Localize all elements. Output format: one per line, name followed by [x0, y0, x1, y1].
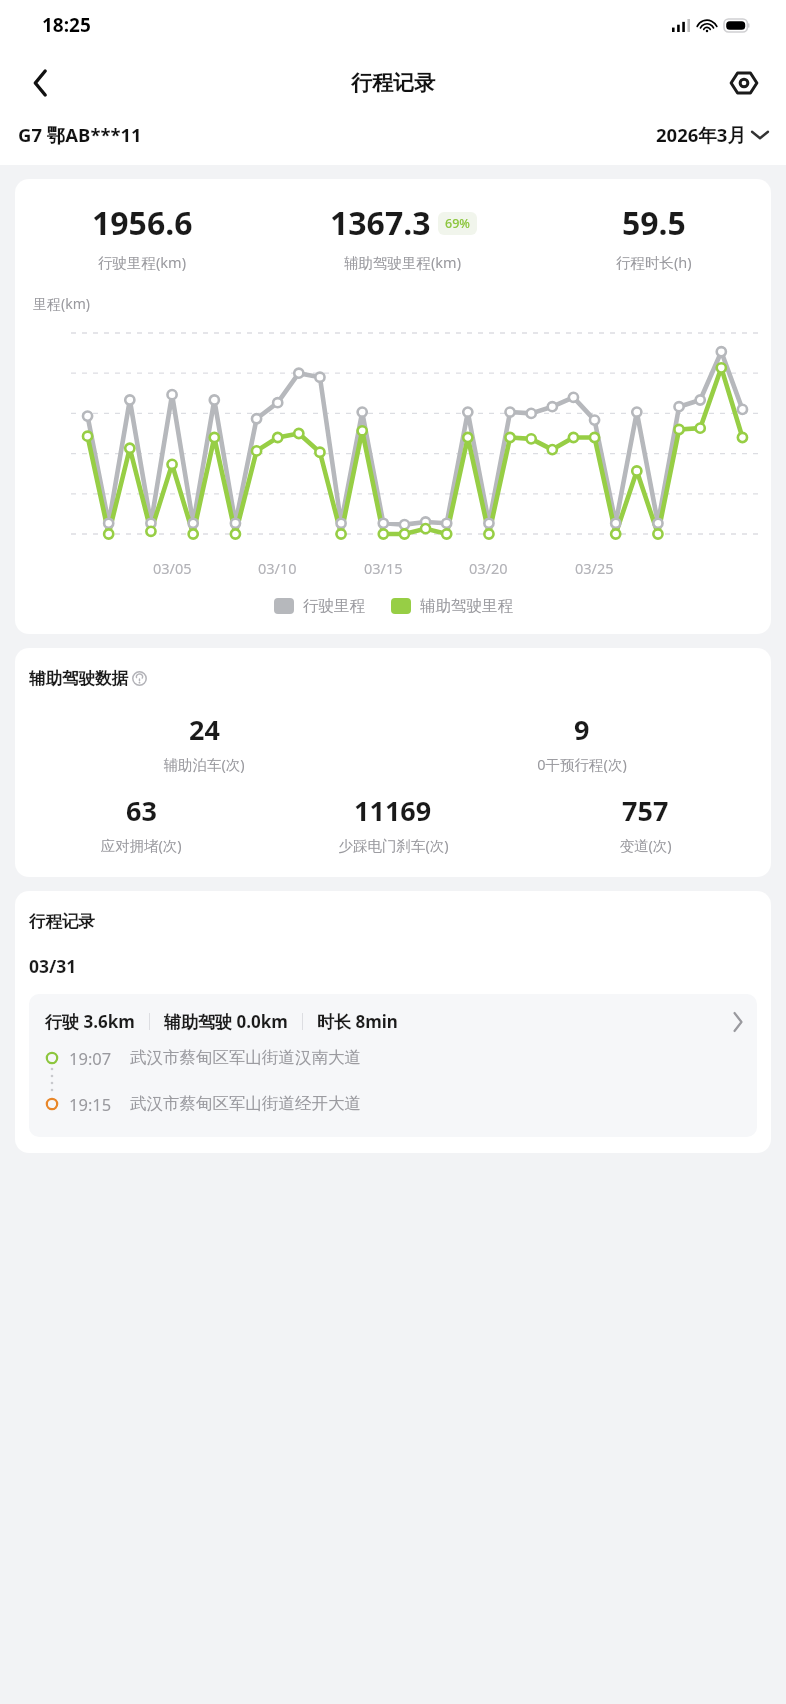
- button[interactable]: 2026年3月: [656, 122, 768, 147]
- staticText: 时长 8min: [317, 1010, 398, 1033]
- staticText: 行驶里程(km): [98, 252, 187, 272]
- staticText: 少踩电门刹车(次): [338, 835, 449, 855]
- staticText: 武汉市蔡甸区军山街道经开大道: [130, 1093, 361, 1114]
- staticText: 0干预行程(次): [537, 754, 627, 774]
- staticText: 63: [126, 792, 157, 829]
- staticText: 9: [574, 711, 590, 748]
- staticText: 行驶里程: [303, 596, 365, 616]
- staticText: 1367.3: [330, 201, 431, 245]
- staticText: 03/05: [153, 558, 192, 578]
- staticText: 1956.6: [92, 201, 193, 245]
- staticText: 757: [622, 792, 669, 829]
- staticText: 11169: [354, 792, 432, 829]
- staticText: 辅助驾驶数据: [29, 668, 128, 689]
- staticText: 里程(km): [33, 294, 90, 313]
- staticText: 03/31: [29, 954, 77, 978]
- staticText: 行程记录: [351, 70, 435, 96]
- staticText: 2026年3月: [656, 122, 746, 147]
- staticText: 03/15: [364, 558, 403, 578]
- button[interactable]: Settings: [720, 59, 768, 107]
- button[interactable]: 行驶 3.6km: [29, 994, 757, 1137]
- staticText: 辅助驾驶里程(km): [344, 252, 462, 272]
- staticText: 辅助泊车(次): [163, 754, 245, 774]
- staticText: 19:07: [69, 1047, 112, 1069]
- staticText: 变道(次): [619, 835, 672, 855]
- staticText: 行程时长(h): [616, 252, 692, 272]
- staticText: 24: [189, 711, 220, 748]
- staticText: 18:25: [42, 12, 91, 38]
- staticText: 行驶 3.6km: [45, 1010, 135, 1033]
- staticText: 武汉市蔡甸区军山街道汉南大道: [130, 1047, 361, 1068]
- staticText: 03/20: [469, 558, 508, 578]
- staticText: 03/10: [258, 558, 297, 578]
- staticText: 59.5: [622, 201, 686, 245]
- staticText: 03/25: [575, 558, 614, 578]
- staticText: G7 鄂AB***11: [18, 122, 142, 147]
- staticText: 19:15: [69, 1093, 112, 1115]
- button[interactable]: Back: [16, 59, 64, 107]
- staticText: 应对拥堵(次): [100, 835, 182, 855]
- staticText: 69%: [445, 215, 470, 232]
- staticText: 辅助驾驶 0.0km: [164, 1010, 288, 1033]
- staticText: 行程记录: [29, 911, 95, 932]
- staticText: 辅助驾驶里程: [420, 596, 513, 616]
